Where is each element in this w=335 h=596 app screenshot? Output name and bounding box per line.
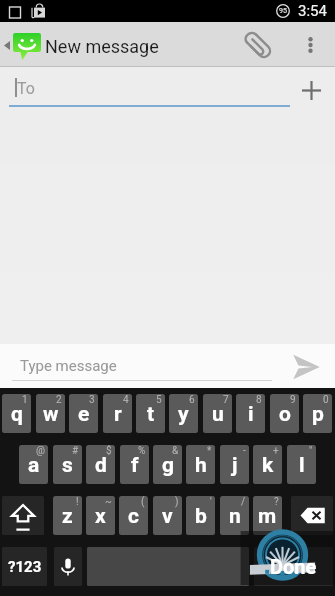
- staticText: y: [178, 402, 189, 427]
- button[interactable]: a: [19, 445, 48, 484]
- button[interactable]: n: [220, 496, 249, 535]
- staticText: a: [28, 453, 40, 478]
- staticText: j: [232, 453, 238, 478]
- button[interactable]: h: [186, 445, 215, 484]
- button[interactable]: Navigate up: [0, 22, 43, 67]
- staticText: n: [229, 504, 241, 529]
- staticText: o: [279, 402, 291, 427]
- staticText: 9: [290, 394, 296, 406]
- button[interactable]: s: [53, 445, 82, 484]
- staticText: b: [195, 504, 207, 529]
- staticText: v: [162, 504, 173, 529]
- button[interactable]: l: [287, 445, 316, 484]
- staticText: @: [36, 445, 45, 457]
- staticText: 3: [89, 394, 95, 406]
- staticText: q: [11, 402, 23, 427]
- button[interactable]: o: [270, 394, 299, 433]
- button[interactable]: g: [153, 445, 182, 484]
- button[interactable]: More options: [290, 22, 330, 67]
- staticText: 0: [323, 394, 329, 406]
- staticText: +: [273, 445, 279, 457]
- staticText: w: [43, 402, 59, 427]
- staticText: *: [207, 445, 212, 457]
- button[interactable]: v: [153, 496, 182, 535]
- button[interactable]: z: [53, 496, 82, 535]
- button[interactable]: ?123: [2, 547, 47, 586]
- staticText: Type message: [20, 357, 117, 375]
- button[interactable]: d: [86, 445, 115, 484]
- staticText: 4: [123, 394, 129, 406]
- staticText: l: [299, 453, 305, 478]
- button[interactable]: e: [69, 394, 98, 433]
- button[interactable]: Voice input: [54, 547, 82, 586]
- button[interactable]: Shift: [2, 496, 44, 535]
- staticText: 2: [56, 394, 62, 406]
- staticText: 6: [189, 394, 195, 406]
- staticText: #: [72, 445, 79, 457]
- staticText: ?123: [8, 558, 42, 576]
- staticText: r: [114, 402, 122, 427]
- staticText: x: [95, 504, 106, 529]
- button[interactable]: f: [120, 445, 149, 484]
- staticText: ?: [274, 496, 279, 508]
- staticText: k: [262, 453, 274, 478]
- staticText: To: [17, 79, 35, 98]
- staticText: 1: [22, 394, 28, 406]
- staticText: -: [243, 445, 246, 457]
- button[interactable]: i: [236, 394, 265, 433]
- button[interactable]: j: [220, 445, 249, 484]
- button[interactable]: y: [169, 394, 198, 433]
- staticText: z: [62, 504, 73, 529]
- button[interactable]: [254, 547, 333, 586]
- button[interactable]: Backspace: [291, 496, 333, 535]
- staticText: c: [128, 504, 139, 529]
- staticText: 5: [156, 394, 162, 406]
- staticText: /: [241, 496, 246, 508]
- staticText: ": [309, 445, 313, 457]
- staticText: d: [95, 453, 107, 478]
- button[interactable]: q: [2, 394, 31, 433]
- button[interactable]: r: [103, 394, 132, 433]
- staticText: u: [212, 402, 224, 427]
- button[interactable]: c: [119, 496, 148, 535]
- staticText: e: [78, 402, 90, 427]
- staticText: i: [248, 402, 254, 427]
- staticText: 3:54: [298, 2, 327, 20]
- staticText: &: [172, 445, 179, 457]
- staticText: s: [62, 453, 73, 478]
- button[interactable]: b: [186, 496, 215, 535]
- staticText: !: [76, 496, 79, 508]
- staticText: h: [195, 453, 207, 478]
- staticText: (: [141, 496, 145, 508]
- staticText: f: [131, 453, 139, 478]
- staticText: New message: [45, 36, 159, 57]
- staticText: g: [162, 453, 174, 478]
- button[interactable]: u: [203, 394, 232, 433]
- staticText: 95: [279, 7, 287, 15]
- staticText: ~: [105, 496, 112, 508]
- button[interactable]: Attach: [235, 22, 280, 67]
- staticText: 7: [223, 394, 229, 406]
- staticText: ): [175, 496, 179, 508]
- button[interactable]: w: [36, 394, 65, 433]
- button[interactable]: Space: [87, 547, 249, 586]
- button[interactable]: t: [136, 394, 165, 433]
- staticText: p: [312, 402, 324, 427]
- button[interactable]: Send: [283, 345, 327, 387]
- button[interactable]: x: [86, 496, 115, 535]
- staticText: %: [138, 445, 146, 457]
- staticText: m: [258, 504, 277, 529]
- staticText: $: [106, 445, 112, 457]
- button[interactable]: m: [253, 496, 282, 535]
- staticText: ': [210, 496, 212, 508]
- staticText: Done: [270, 555, 317, 578]
- staticText: 8: [256, 394, 262, 406]
- button[interactable]: p: [303, 394, 332, 433]
- staticText: t: [147, 402, 155, 427]
- button[interactable]: k: [253, 445, 282, 484]
- button[interactable]: Add recipient: [289, 69, 333, 112]
